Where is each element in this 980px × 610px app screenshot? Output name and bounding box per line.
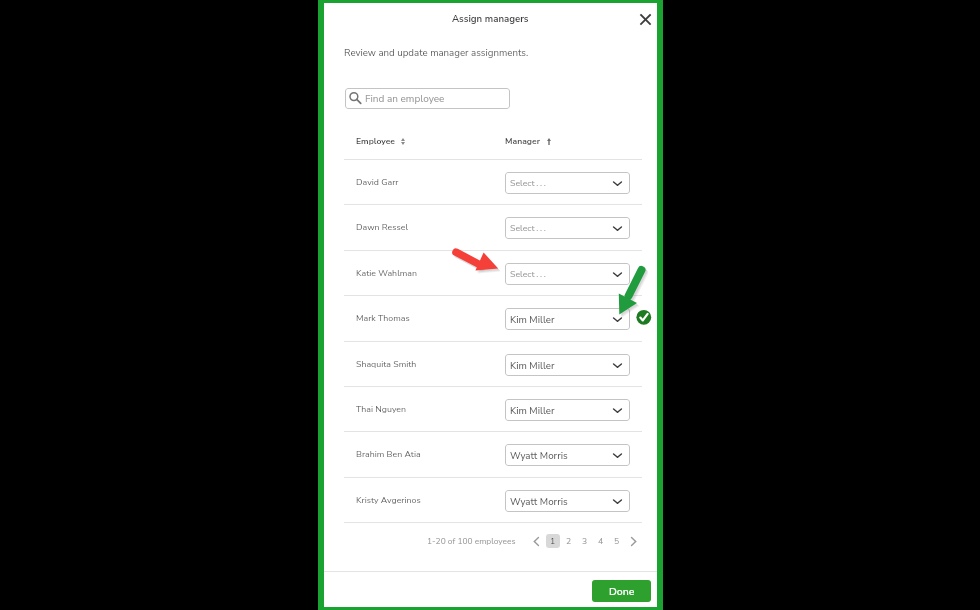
staticText: Review and update manager assignments. [344, 46, 529, 59]
staticText: Mark Thomas [356, 312, 410, 324]
staticText: Wyatt Morris [510, 449, 568, 462]
button[interactable]: 4 [594, 534, 608, 548]
staticText: Kim Miller [510, 313, 555, 326]
button[interactable]: Next page [626, 534, 640, 548]
staticText: Dawn Ressel [356, 221, 409, 233]
button[interactable]: Shaquita Smith [344, 341, 642, 386]
button[interactable]: Thai Nguyen [344, 386, 642, 431]
button[interactable]: 2 [562, 534, 576, 548]
staticText: 1 [550, 535, 556, 547]
staticText: Select . . . [510, 268, 546, 280]
staticText: Kim Miller [510, 359, 555, 372]
staticText: Find an employee [365, 92, 445, 106]
staticText: 2 [566, 535, 572, 547]
staticText: Wyatt Morris [510, 495, 568, 508]
staticText: Manager [505, 135, 540, 147]
button[interactable]: David Garr [344, 159, 642, 204]
staticText: Kim Miller [510, 404, 555, 417]
staticText: 3 [582, 535, 588, 547]
button[interactable]: Kim Miller [505, 399, 630, 421]
staticText: Kristy Avgerinos [356, 494, 421, 506]
staticText: 4 [598, 535, 604, 547]
button[interactable]: Select . . . [505, 263, 630, 285]
staticText: Select . . . [510, 177, 546, 189]
button[interactable]: Close [636, 10, 654, 28]
button[interactable]: Wyatt Morris [505, 444, 630, 466]
button[interactable]: Employee [356, 134, 405, 148]
staticText: Assign managers [452, 12, 529, 25]
button[interactable]: Select . . . [505, 172, 630, 194]
staticText: Brahim Ben Atia [356, 448, 421, 460]
button[interactable]: Done [592, 580, 651, 602]
staticText: Katie Wahlman [356, 267, 417, 279]
button[interactable]: Select . . . [505, 217, 630, 239]
button[interactable]: 1 [546, 534, 560, 548]
button[interactable]: Brahim Ben Atia [344, 431, 642, 476]
staticText: Select . . . [510, 222, 546, 234]
button[interactable]: Find an employee [345, 88, 510, 109]
staticText: Thai Nguyen [356, 403, 407, 415]
staticText: Employee [356, 135, 396, 147]
button[interactable]: Kim Miller [505, 308, 630, 330]
staticText: 1-20 of 100 employees [427, 536, 516, 547]
staticText: Done [609, 584, 635, 598]
button[interactable]: Katie Wahlman [344, 250, 642, 295]
button[interactable]: Kim Miller [505, 354, 630, 376]
button[interactable]: Manager [505, 134, 551, 148]
button[interactable]: Mark Thomas [344, 295, 642, 340]
button[interactable]: Previous page [529, 534, 543, 548]
button[interactable]: 3 [578, 534, 592, 548]
staticText: David Garr [356, 176, 399, 188]
button[interactable]: 5 [610, 534, 624, 548]
button[interactable]: Wyatt Morris [505, 490, 630, 512]
button[interactable]: Kristy Avgerinos [344, 477, 642, 522]
staticText: Shaquita Smith [356, 358, 417, 370]
staticText: 5 [614, 535, 620, 547]
button[interactable]: Dawn Ressel [344, 204, 642, 249]
